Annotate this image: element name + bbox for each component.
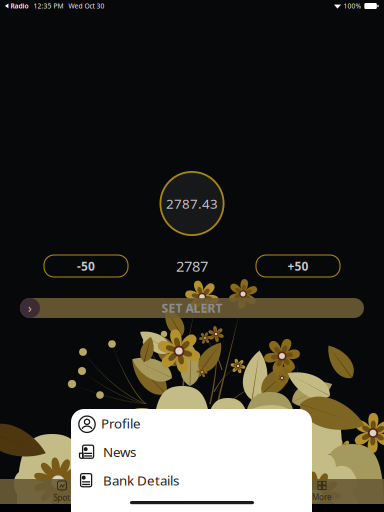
staticText: More <box>312 492 332 502</box>
staticText: 12:35 PM <box>33 2 63 10</box>
staticText: -50 <box>77 258 95 274</box>
staticText: 2787.43 <box>166 195 218 212</box>
button[interactable]: +50 <box>256 255 340 277</box>
staticText: Radio <box>10 2 28 10</box>
staticText: News <box>103 443 136 461</box>
button[interactable]: -50 <box>44 255 128 277</box>
staticText: 2787 <box>176 256 208 276</box>
button[interactable]: SET ALERT <box>20 298 364 318</box>
button[interactable]: Profile <box>71 409 312 437</box>
button[interactable]: News <box>71 437 312 466</box>
staticText: Bank Details <box>103 471 179 489</box>
button[interactable]: Bank Details <box>71 466 312 494</box>
staticText: SET ALERT <box>161 300 222 316</box>
button[interactable]: Spot <box>40 479 84 503</box>
staticText: +50 <box>287 258 308 274</box>
staticText: Spot <box>53 492 70 503</box>
staticText: › <box>28 300 32 316</box>
staticText: 100% <box>343 2 361 10</box>
staticText: Wed Oct 30 <box>68 2 104 10</box>
staticText: Profile <box>101 414 141 432</box>
button[interactable]: More <box>300 479 344 503</box>
